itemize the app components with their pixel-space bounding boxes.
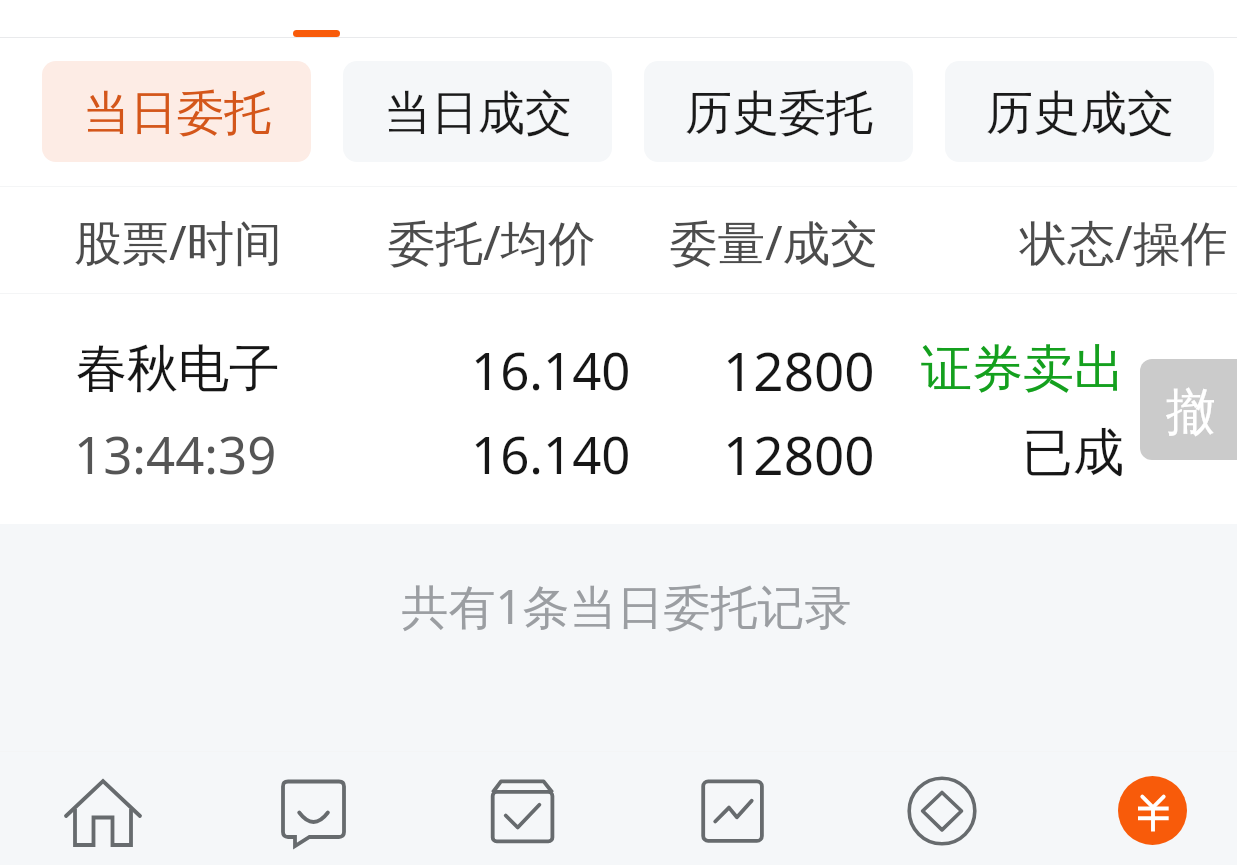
- button[interactable]: 历史成交: [945, 61, 1214, 162]
- staticText: 股票/时间: [74, 209, 282, 274]
- staticText: 16.140: [471, 335, 631, 404]
- button[interactable]: Markets: [630, 752, 836, 865]
- staticText: 共有1条当日委托记录: [8, 574, 1237, 638]
- staticText: 撤: [1166, 381, 1216, 444]
- button[interactable]: Messages: [210, 752, 416, 865]
- staticText: 历史委托: [685, 84, 873, 143]
- button[interactable]: 春秋电子: [0, 294, 1237, 524]
- button[interactable]: 撤: [1140, 359, 1237, 460]
- staticText: 已成: [1022, 421, 1124, 485]
- button[interactable]: 历史委托: [644, 61, 913, 162]
- button[interactable]: 当日成交: [343, 61, 612, 162]
- button[interactable]: Discover: [840, 752, 1046, 865]
- staticText: 委量/成交: [670, 209, 878, 274]
- staticText: 历史成交: [986, 84, 1174, 143]
- staticText: 证券卖出: [921, 337, 1125, 401]
- button[interactable]: Trade: [1118, 776, 1187, 845]
- button[interactable]: Orders: [420, 752, 626, 865]
- staticText: 状态/操作: [1020, 209, 1228, 274]
- staticText: 13:44:39: [74, 419, 277, 488]
- staticText: 当日委托: [83, 84, 271, 143]
- staticText: 16.140: [471, 419, 631, 488]
- button[interactable]: 当日委托: [42, 61, 311, 162]
- button[interactable]: Home: [0, 752, 206, 865]
- staticText: 12800: [723, 334, 875, 404]
- staticText: 春秋电子: [76, 337, 280, 401]
- staticText: 当日成交: [384, 84, 572, 143]
- staticText: 委托/均价: [388, 209, 596, 274]
- staticText: 12800: [723, 418, 875, 488]
